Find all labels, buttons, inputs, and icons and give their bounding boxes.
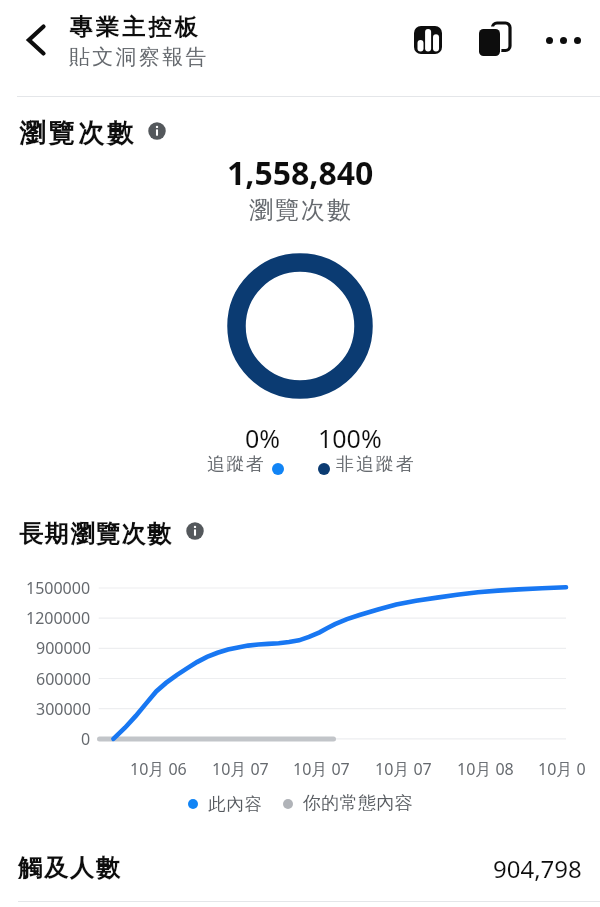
staticText: 1500000 bbox=[26, 577, 91, 599]
button[interactable]: Insights bbox=[402, 14, 454, 66]
button[interactable]: More options bbox=[537, 14, 589, 66]
button[interactable]: 觸及人數 bbox=[0, 833, 600, 903]
staticText: 瀏覽次數 bbox=[19, 117, 137, 150]
staticText: 904,798 bbox=[493, 852, 582, 885]
staticText: 0% bbox=[245, 421, 281, 455]
staticText: 0 bbox=[81, 728, 91, 750]
staticText: 非追蹤者 bbox=[336, 453, 416, 476]
staticText: 10月 06 bbox=[130, 758, 187, 780]
staticText: 900000 bbox=[36, 637, 91, 659]
staticText: 瀏覽次數 bbox=[248, 195, 352, 225]
staticText: 觸及人數 bbox=[18, 853, 122, 883]
staticText: 1,558,840 bbox=[227, 151, 374, 195]
staticText: 貼文洞察報告 bbox=[69, 44, 209, 70]
staticText: 專業主控板 bbox=[68, 13, 199, 42]
staticText: 你的常態內容 bbox=[303, 792, 413, 815]
staticText: 此內容 bbox=[208, 793, 263, 815]
button[interactable]: Duplicate bbox=[468, 8, 520, 72]
staticText: 600000 bbox=[36, 668, 91, 690]
staticText: 100% bbox=[318, 421, 382, 455]
staticText: 10月 07 bbox=[212, 758, 269, 780]
button[interactable]: 此內容 bbox=[188, 793, 263, 815]
button[interactable]: 你的常態內容 bbox=[283, 792, 413, 815]
staticText: 300000 bbox=[36, 698, 91, 720]
button[interactable]: 瀏覽次數 bbox=[19, 117, 166, 150]
staticText: 10月 07 bbox=[375, 758, 432, 780]
staticText: 長期瀏覽次數 bbox=[19, 519, 173, 549]
staticText: 1200000 bbox=[26, 607, 91, 629]
staticText: 10月 08 bbox=[457, 758, 514, 780]
staticText: 10月 0 bbox=[538, 758, 586, 780]
staticText: 10月 07 bbox=[293, 758, 350, 780]
button[interactable]: 非追蹤者 bbox=[318, 453, 416, 476]
button[interactable]: 追蹤者 bbox=[207, 453, 284, 476]
staticText: 追蹤者 bbox=[207, 453, 266, 476]
button[interactable]: Back bbox=[14, 0, 70, 80]
button[interactable]: 長期瀏覽次數 bbox=[19, 519, 204, 549]
